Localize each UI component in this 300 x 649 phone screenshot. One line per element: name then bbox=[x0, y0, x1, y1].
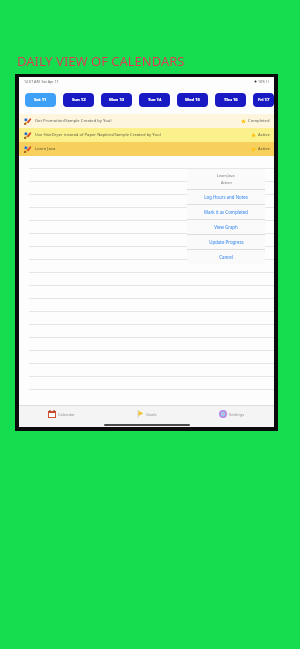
button[interactable]: Sun 12 bbox=[63, 93, 94, 107]
button[interactable]: Learn Java bbox=[23, 142, 270, 156]
button[interactable]: Fri 17 bbox=[253, 93, 274, 107]
staticText: Use HairDryer instead of Paper Napkins(S… bbox=[35, 132, 251, 138]
button[interactable]: Sat 11 bbox=[25, 93, 56, 107]
staticText: Mark it as Completed bbox=[204, 209, 248, 215]
other: Settings bbox=[219, 410, 227, 418]
button[interactable]: Cancel bbox=[187, 250, 265, 264]
staticText: Sat 11 bbox=[34, 97, 47, 103]
button[interactable]: Settings bbox=[189, 410, 274, 418]
staticText: Learn Java bbox=[35, 146, 251, 152]
staticText: Cancel bbox=[219, 254, 233, 260]
button[interactable]: Mon 13 bbox=[101, 93, 132, 107]
staticText: 12:07 AM Sat Apr 11 bbox=[24, 79, 59, 84]
button[interactable]: Update Progress bbox=[187, 235, 265, 249]
staticText: Goals bbox=[146, 412, 157, 417]
staticText: Settings bbox=[229, 412, 245, 417]
staticText: Wed 15 bbox=[185, 97, 200, 103]
staticText: Active bbox=[258, 132, 270, 138]
staticText: Thu 16 bbox=[224, 97, 238, 103]
staticText: Calendar bbox=[58, 412, 75, 417]
button[interactable]: View Graph bbox=[187, 220, 265, 234]
button[interactable]: Goals bbox=[104, 410, 189, 418]
other: Goals bbox=[136, 410, 144, 418]
staticText: View Graph bbox=[214, 224, 238, 230]
staticText: Active bbox=[258, 146, 270, 152]
staticText: Learn Java bbox=[217, 173, 235, 178]
button[interactable]: Log Hours and Notes bbox=[187, 190, 265, 204]
staticText: DAILY VIEW OF CALENDARS bbox=[17, 52, 185, 70]
button[interactable]: Wed 15 bbox=[177, 93, 208, 107]
staticText: Log Hours and Notes bbox=[204, 194, 248, 200]
button[interactable]: Thu 16 bbox=[215, 93, 246, 107]
button[interactable]: Tue 14 bbox=[139, 93, 170, 107]
staticText: Update Progress bbox=[209, 239, 244, 245]
staticText: Completed bbox=[248, 118, 270, 124]
staticText: Action bbox=[221, 180, 232, 185]
button[interactable]: Use HairDryer instead of Paper Napkins(S… bbox=[23, 128, 270, 142]
button[interactable]: Mark it as Completed bbox=[187, 205, 265, 219]
staticText: Get Promotion(Sample Created by You) bbox=[35, 118, 241, 124]
staticText: Mon 13 bbox=[109, 97, 125, 103]
staticText: Fri 17 bbox=[258, 97, 270, 103]
button[interactable]: Get Promotion(Sample Created by You) bbox=[23, 114, 270, 128]
button[interactable]: Calendar bbox=[19, 410, 104, 418]
staticText: Sun 12 bbox=[72, 97, 86, 103]
staticText: 10% ( ) bbox=[258, 79, 270, 84]
other: Calendar bbox=[48, 410, 56, 418]
staticText: Tue 14 bbox=[148, 97, 162, 103]
